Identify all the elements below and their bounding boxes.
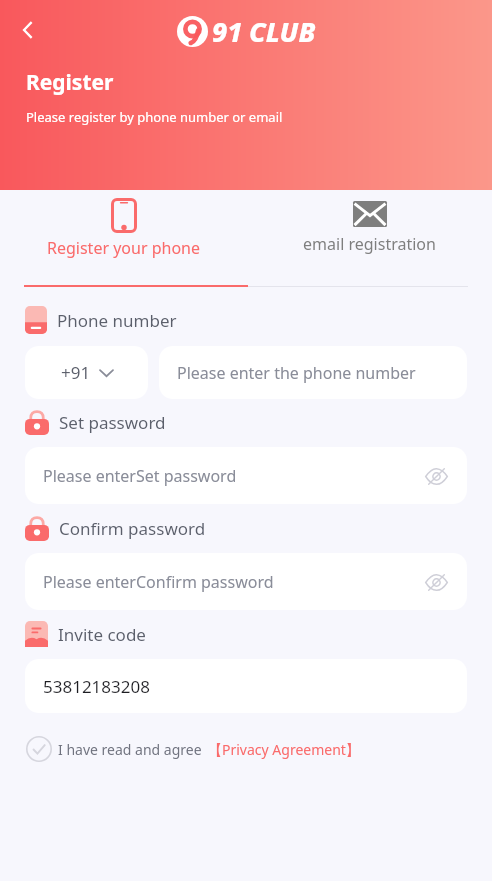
button[interactable]: email registration — [246, 190, 492, 287]
button[interactable]: Please enterConfirm password — [25, 553, 467, 610]
button[interactable]: Register your phone — [0, 190, 246, 287]
button[interactable]: 【Privacy Agreement】 — [208, 740, 360, 759]
staticText: Phone number — [57, 309, 177, 332]
staticText: Register — [26, 68, 114, 97]
staticText: Confirm password — [59, 517, 206, 540]
button[interactable]: Show password — [417, 563, 455, 601]
staticText: Invite code — [58, 623, 146, 646]
button[interactable]: 53812183208 — [25, 659, 467, 713]
staticText: Set password — [59, 411, 166, 434]
staticText: 【Privacy Agreement】 — [208, 740, 360, 759]
staticText: Please enterConfirm password — [43, 571, 274, 593]
button[interactable]: Please enter the phone number — [159, 346, 467, 399]
staticText: Register your phone — [47, 237, 200, 259]
staticText: email registration — [303, 233, 436, 255]
staticText: +91 — [61, 361, 91, 384]
button[interactable]: Please enterSet password — [25, 447, 467, 504]
staticText: Please enter the phone number — [177, 362, 416, 384]
staticText: 91 — [212, 13, 243, 50]
button[interactable]: +91 — [25, 346, 148, 399]
staticText: Please register by phone number or email — [26, 108, 283, 126]
staticText: I have read and agree — [58, 740, 202, 759]
button[interactable]: Show password — [417, 457, 455, 495]
staticText: CLUB — [249, 13, 316, 50]
staticText: 53812183208 — [43, 675, 150, 698]
staticText: Please enterSet password — [43, 465, 237, 487]
button[interactable]: Back — [8, 10, 48, 50]
button[interactable]: Agree to privacy agreement — [24, 734, 54, 764]
